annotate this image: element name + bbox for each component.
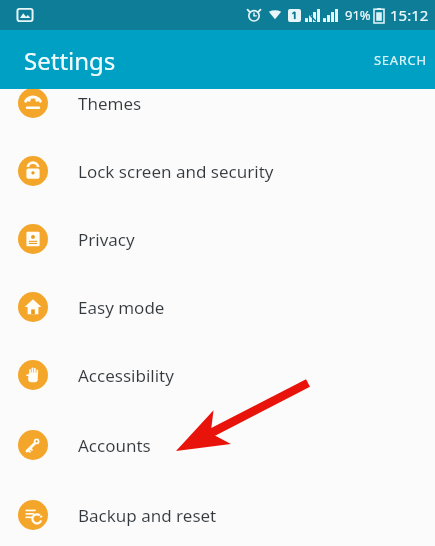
staticText: Easy mode — [78, 296, 165, 319]
staticText: SEARCH — [374, 51, 427, 69]
staticText: Privacy — [78, 228, 135, 251]
staticText: Lock screen and security — [78, 160, 274, 183]
staticText: Settings — [24, 44, 116, 77]
button[interactable]: SEARCH — [366, 41, 435, 79]
button[interactable]: Backup and reset — [0, 481, 435, 546]
button[interactable]: Accounts — [0, 411, 435, 479]
staticText: Accounts — [78, 434, 151, 457]
button[interactable]: Themes — [0, 89, 435, 137]
button[interactable]: Easy mode — [0, 273, 435, 341]
staticText: Accessibility — [78, 364, 174, 387]
button[interactable]: Lock screen and security — [0, 137, 435, 205]
staticText: Backup and reset — [78, 504, 217, 527]
staticText: Themes — [78, 92, 142, 115]
button[interactable]: Accessibility — [0, 341, 435, 409]
staticText: 15:12 — [390, 5, 429, 25]
staticText: 91% — [345, 6, 371, 24]
button[interactable]: Privacy — [0, 205, 435, 273]
